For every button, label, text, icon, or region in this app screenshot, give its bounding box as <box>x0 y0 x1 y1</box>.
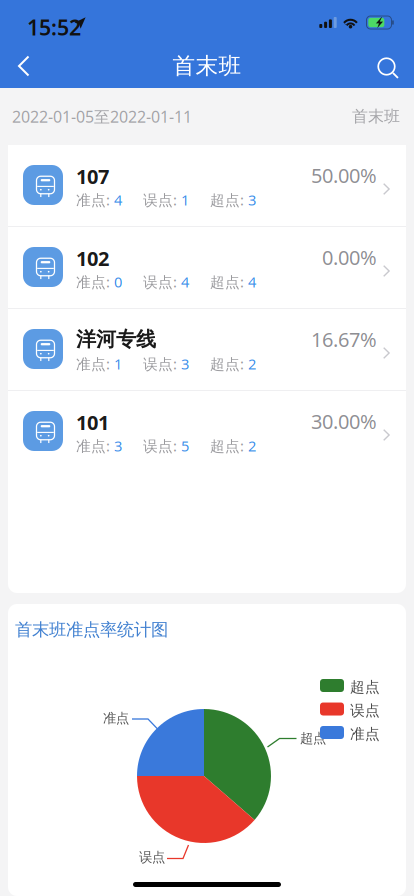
staticText: 超点: <box>210 354 244 373</box>
staticText: 102 <box>76 245 109 272</box>
staticText: 1 <box>110 354 122 373</box>
staticText: 超点: <box>210 190 244 209</box>
staticText: 15:52 <box>27 13 81 41</box>
staticText: 30.00% <box>311 408 377 435</box>
staticText: 3 <box>177 354 189 373</box>
staticText: 误点: <box>143 272 177 291</box>
staticText: 0 <box>110 272 122 291</box>
button[interactable]: 107 <box>8 145 406 227</box>
staticText: 准点: <box>76 354 110 373</box>
staticText: 误点: <box>143 190 177 209</box>
staticText: 误点 <box>350 701 380 719</box>
button[interactable]: 101 <box>8 391 406 473</box>
staticText: 107 <box>76 163 109 190</box>
staticText: 准点 <box>350 725 380 743</box>
staticText: 3 <box>110 436 122 455</box>
staticText: 准点: <box>76 272 110 291</box>
staticText: 50.00% <box>311 162 377 189</box>
staticText: 准点 <box>103 710 129 726</box>
staticText: 3 <box>244 190 256 209</box>
staticText: 超点 <box>350 678 380 696</box>
staticText: 超点: <box>210 272 244 291</box>
button[interactable]: 洋河专线 <box>8 309 406 391</box>
staticText: 误点: <box>143 436 177 455</box>
staticText: 首末班 <box>352 107 400 126</box>
staticText: 1 <box>177 190 189 209</box>
staticText: 4 <box>244 272 256 291</box>
staticText: 首末班准点率统计图 <box>15 619 168 640</box>
staticText: 4 <box>110 190 122 209</box>
staticText: 误点: <box>143 354 177 373</box>
staticText: 洋河专线 <box>76 327 156 352</box>
button[interactable]: Back <box>0 44 44 88</box>
staticText: 准点: <box>76 190 110 209</box>
staticText: 16.67% <box>311 326 377 353</box>
staticText: 误点 <box>139 849 165 865</box>
staticText: 超点: <box>210 436 244 455</box>
staticText: 超点 <box>300 730 326 746</box>
staticText: 2 <box>244 436 256 455</box>
staticText: 2 <box>244 354 256 373</box>
staticText: 2022-01-05至2022-01-11 <box>12 106 192 127</box>
staticText: 4 <box>177 272 189 291</box>
staticText: 5 <box>177 436 189 455</box>
staticText: 0.00% <box>322 244 377 271</box>
staticText: 首末班 <box>172 52 241 80</box>
button[interactable]: Search <box>361 44 414 88</box>
staticText: 准点: <box>76 436 110 455</box>
staticText: 101 <box>76 409 109 436</box>
button[interactable]: 102 <box>8 227 406 309</box>
